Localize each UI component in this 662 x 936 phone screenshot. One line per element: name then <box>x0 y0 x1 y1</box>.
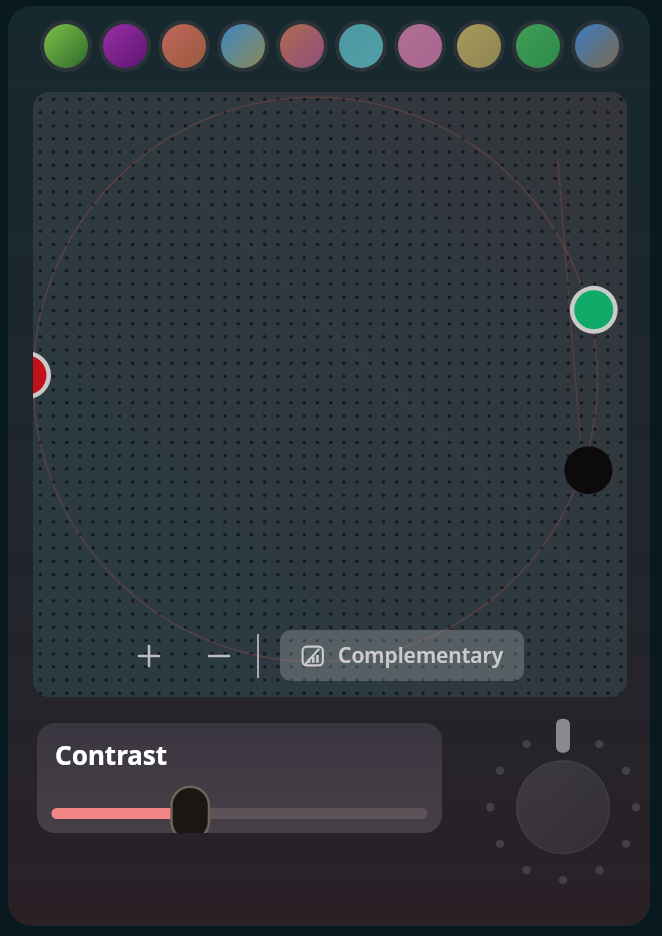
button[interactable]: Palette 2 <box>99 20 151 72</box>
button[interactable]: Contrast <box>37 723 442 833</box>
button[interactable]: Complementary <box>280 630 524 681</box>
button[interactable]: Palette 3 <box>158 20 210 72</box>
button[interactable]: Rotation dial <box>472 697 654 887</box>
staticText: Complementary <box>338 641 504 670</box>
button[interactable]: Palette 6 <box>335 20 387 72</box>
button[interactable]: Palette 9 <box>512 20 564 72</box>
button[interactable]: Palette 5 <box>276 20 328 72</box>
button[interactable]: Palette 8 <box>453 20 505 72</box>
button[interactable]: Remove colour stop <box>199 636 239 676</box>
button[interactable]: Add colour stop <box>129 636 169 676</box>
button[interactable]: Add colour stop <box>33 92 627 697</box>
button[interactable]: Palette 1 <box>40 20 92 72</box>
button[interactable]: Palette 7 <box>394 20 446 72</box>
button[interactable]: Palette 10 <box>571 20 623 72</box>
staticText: Contrast <box>55 737 168 772</box>
button[interactable]: Palette 4 <box>217 20 269 72</box>
